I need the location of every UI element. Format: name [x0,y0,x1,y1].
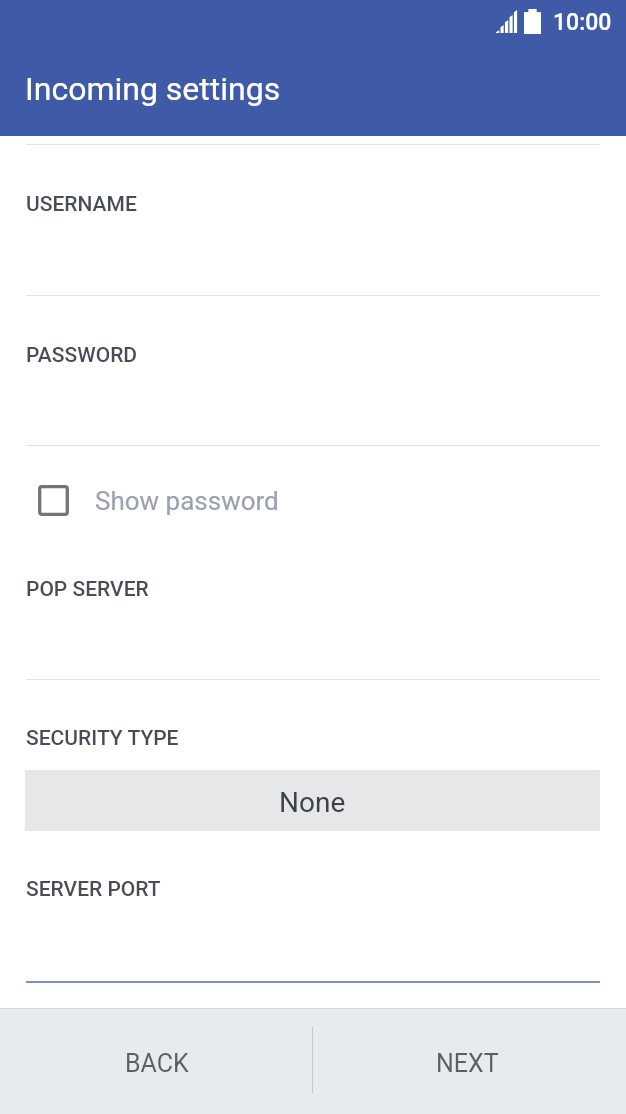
staticText: Incoming settings [25,70,281,108]
staticText: PASSWORD [26,343,138,368]
staticText: USERNAME [26,192,137,217]
staticText: BACK [125,1049,189,1078]
staticText: SECURITY TYPE [26,726,179,751]
button[interactable]: USERNAME [0,152,626,296]
button[interactable]: BACK [0,1009,313,1114]
button[interactable]: POP SERVER [0,537,626,680]
staticText: 10:00 [553,9,612,36]
staticText: SERVER PORT [26,877,161,902]
button[interactable]: None [25,770,600,831]
button[interactable]: PASSWORD [0,303,626,446]
other: Battery full [524,9,541,34]
button[interactable]: Show password [0,473,626,528]
staticText: NEXT [436,1049,499,1078]
staticText: POP SERVER [26,577,149,602]
staticText: None [279,786,346,819]
other: Mobile signal strength [496,10,518,33]
button[interactable]: SERVER PORT [0,840,626,983]
button[interactable]: NEXT [313,1009,626,1114]
staticText: Show password [95,486,279,516]
